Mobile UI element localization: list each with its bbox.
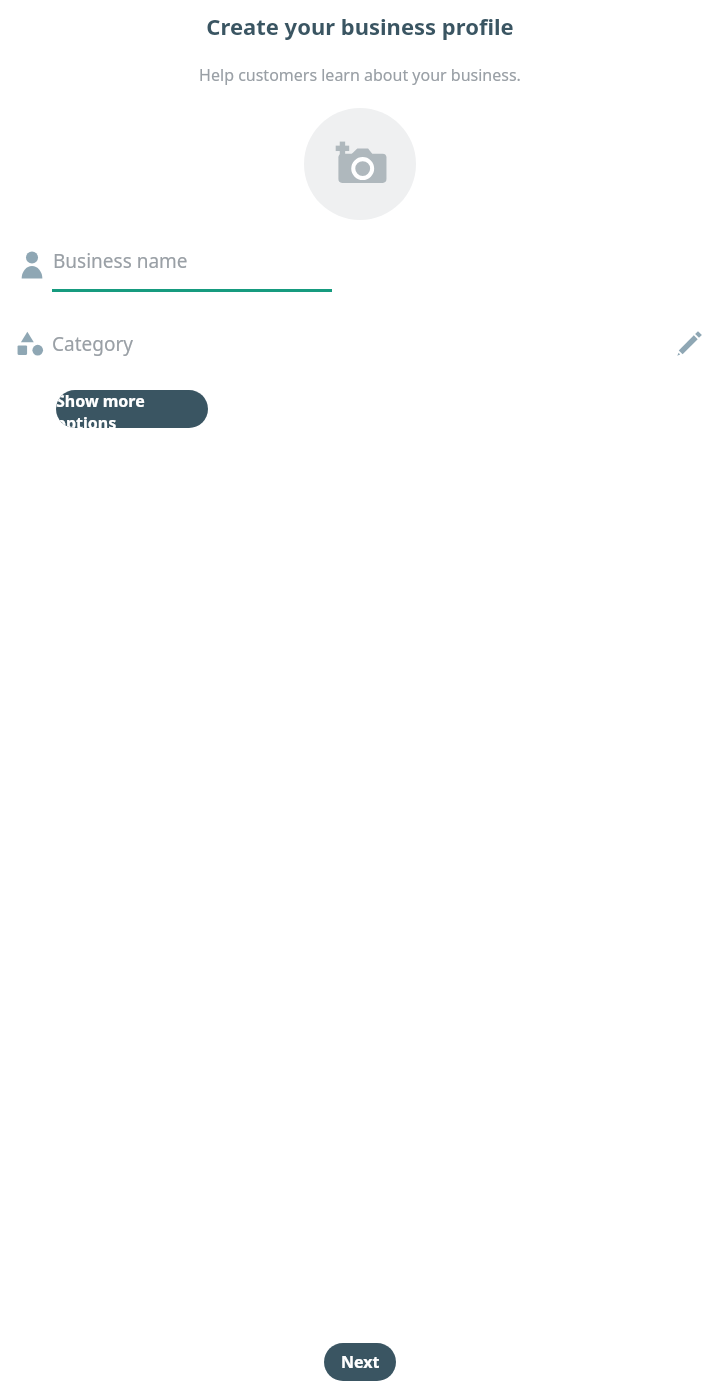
button[interactable]: Business name: [0, 237, 720, 295]
staticText: Help customers learn about your business…: [12, 64, 708, 86]
button[interactable]: Show more options: [56, 390, 208, 428]
staticText: Business name: [53, 248, 188, 274]
button[interactable]: Edit category: [670, 325, 708, 363]
staticText: Category: [52, 331, 133, 357]
staticText: Create your business profile: [12, 11, 708, 41]
staticText: Next: [341, 1351, 380, 1373]
button[interactable]: Add business photo: [304, 108, 416, 220]
button[interactable]: Category: [0, 320, 720, 368]
button[interactable]: Next: [324, 1343, 396, 1381]
staticText: Show more options: [56, 390, 208, 428]
